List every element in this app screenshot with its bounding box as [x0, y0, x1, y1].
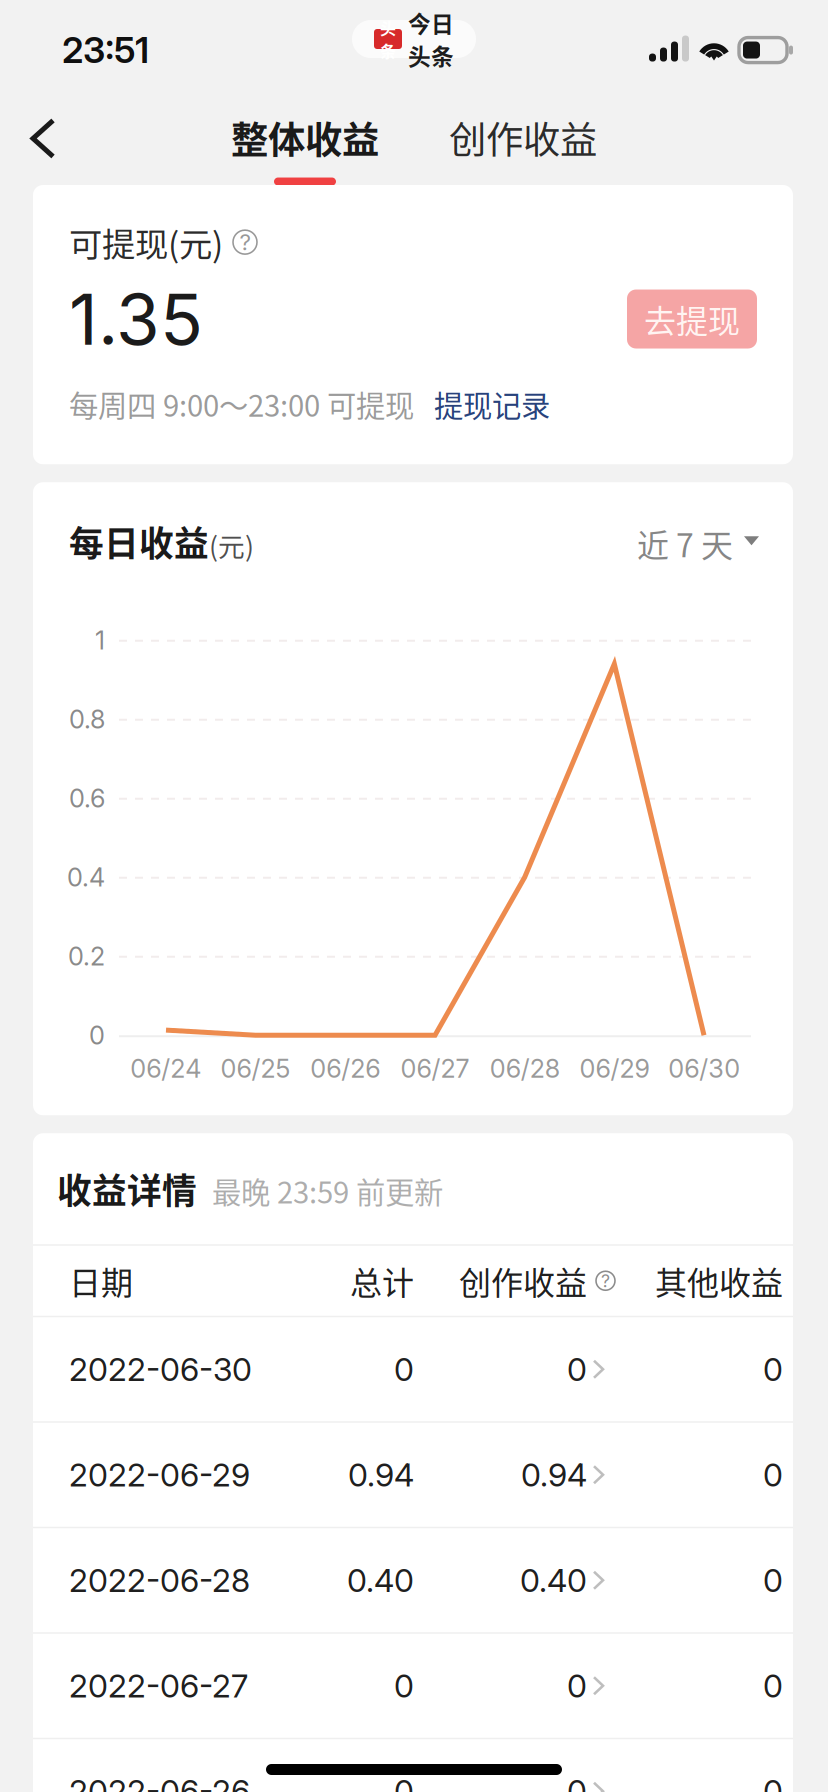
staticText: 0 — [567, 1666, 587, 1705]
staticText: 0 — [763, 1666, 783, 1705]
staticText: 0.2 — [68, 941, 105, 972]
button[interactable]: 提现记录 — [414, 383, 550, 425]
staticText: 0 — [394, 1666, 414, 1705]
staticText: 06/29 — [579, 1053, 649, 1084]
button[interactable]: 创作收益 — [433, 85, 613, 186]
staticText: ? — [601, 1270, 610, 1291]
staticText: 0 — [89, 1020, 105, 1051]
staticText: 2022-06-29 — [69, 1455, 250, 1494]
staticText: 06/26 — [310, 1053, 380, 1084]
staticText: 06/28 — [490, 1053, 560, 1084]
staticText: 23:51 — [62, 28, 149, 72]
staticText: 0.6 — [69, 783, 105, 814]
staticText: 06/30 — [668, 1053, 740, 1084]
staticText: 1.35 — [69, 276, 203, 362]
staticText: 0.8 — [69, 704, 105, 735]
button[interactable]: 整体收益 — [215, 85, 395, 186]
staticText: ? — [239, 229, 250, 256]
staticText: 去提现 — [644, 296, 740, 342]
staticText: 06/27 — [400, 1053, 469, 1084]
staticText: 日期 — [69, 1258, 133, 1304]
staticText: 今日头条 — [408, 6, 454, 72]
staticText: 0 — [567, 1772, 587, 1792]
staticText: 2022-06-30 — [69, 1350, 252, 1389]
staticText: 0 — [394, 1772, 414, 1792]
button[interactable]: 2022-06-29 — [43, 1423, 783, 1527]
staticText: (元) — [209, 526, 254, 564]
staticText: 每周四 9:00～23:00 可提现 — [69, 383, 414, 425]
staticText: 0 — [394, 1350, 414, 1389]
button[interactable]: 2022-06-26 — [43, 1739, 783, 1792]
button[interactable]: 去提现 — [627, 289, 757, 348]
staticText: 头条 — [380, 16, 396, 62]
button[interactable]: 近 7 天 — [637, 520, 759, 566]
button[interactable]: 2022-06-28 — [43, 1528, 783, 1632]
staticText: 总计 — [350, 1258, 414, 1304]
staticText: 2022-06-27 — [69, 1666, 248, 1705]
staticText: 0 — [763, 1561, 783, 1600]
staticText: 06/25 — [221, 1053, 291, 1084]
button[interactable]: 可提现说明 — [233, 230, 257, 254]
staticText: 0 — [567, 1350, 587, 1389]
button[interactable]: 2022-06-30 — [43, 1317, 783, 1421]
staticText: 2022-06-26 — [69, 1772, 250, 1792]
staticText: 近 7 天 — [637, 520, 733, 566]
staticText: 0.40 — [347, 1561, 414, 1600]
button[interactable]: 2022-06-27 — [43, 1634, 783, 1738]
staticText: 创作收益 — [449, 110, 597, 165]
staticText: 0 — [763, 1772, 783, 1792]
staticText: 创作收益 — [459, 1258, 587, 1304]
staticText: 0 — [763, 1455, 783, 1494]
staticText: 0.94 — [348, 1455, 414, 1494]
staticText: 2022-06-28 — [69, 1561, 250, 1600]
staticText: 0.4 — [67, 862, 105, 893]
staticText: 收益详情 — [57, 1164, 197, 1214]
staticText: 06/24 — [130, 1053, 201, 1084]
staticText: 最晚 23:59 前更新 — [212, 1169, 443, 1212]
staticText: 0.94 — [521, 1455, 587, 1494]
button[interactable]: 返回 — [0, 85, 83, 178]
staticText: 其他收益 — [655, 1258, 783, 1304]
staticText: 1 — [95, 625, 105, 656]
staticText: 提现记录 — [434, 383, 550, 425]
staticText: 可提现(元) — [69, 218, 223, 266]
staticText: 0 — [763, 1350, 783, 1389]
staticText: 每日收益 — [69, 516, 209, 566]
staticText: 整体收益 — [231, 110, 379, 165]
staticText: 0.40 — [520, 1561, 587, 1600]
